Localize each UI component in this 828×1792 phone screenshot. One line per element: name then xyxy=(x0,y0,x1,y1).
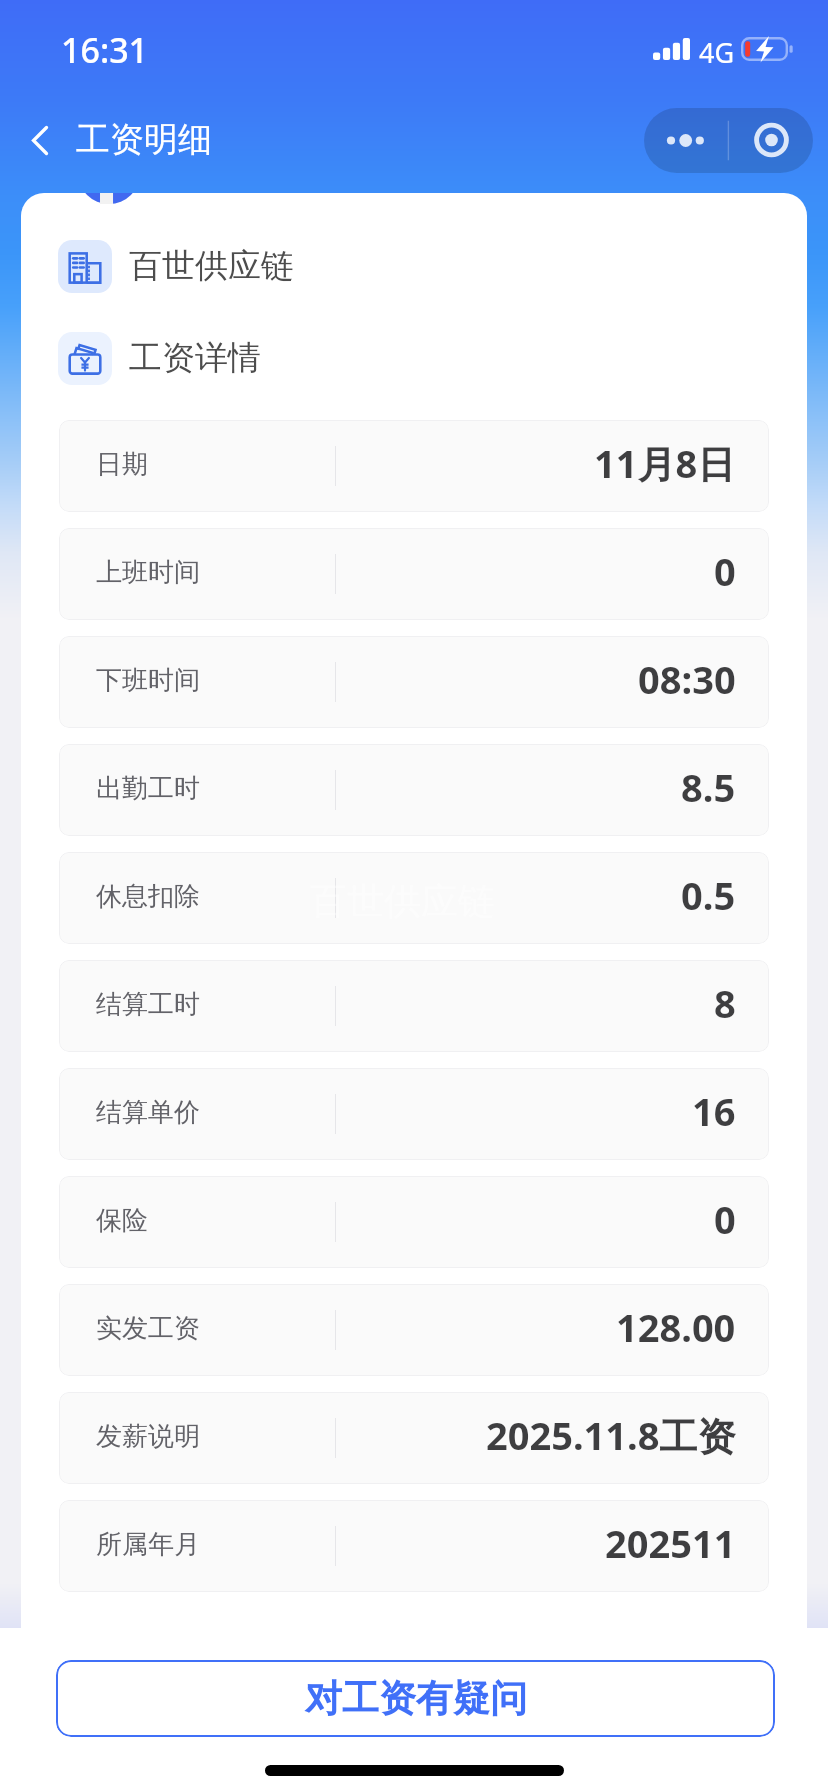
button[interactable]: Back xyxy=(10,110,70,170)
button[interactable]: 休息扣除 xyxy=(59,852,769,944)
button[interactable]: 发薪说明 xyxy=(59,1392,769,1484)
button[interactable]: 出勤工时 xyxy=(59,744,769,836)
staticText: 上班时间 xyxy=(96,556,200,589)
staticText: 百世供应链 xyxy=(129,245,294,287)
staticText: 202511 xyxy=(605,1517,736,1569)
button[interactable]: 上班时间 xyxy=(59,528,769,620)
staticText: 16 xyxy=(692,1085,736,1137)
staticText: 8 xyxy=(714,977,736,1029)
button[interactable]: 所属年月 xyxy=(59,1500,769,1592)
staticText: 工资明细 xyxy=(76,118,212,161)
button[interactable]: 实发工资 xyxy=(59,1284,769,1376)
staticText: 0 xyxy=(714,1193,736,1245)
button[interactable]: 日期 xyxy=(59,420,769,512)
staticText: 对工资有疑问 xyxy=(305,1675,527,1722)
staticText: 2025.11.8工资 xyxy=(486,1409,736,1461)
button[interactable]: 对工资有疑问 xyxy=(56,1660,775,1737)
staticText: 日期 xyxy=(96,448,148,481)
staticText: 出勤工时 xyxy=(96,772,200,805)
staticText: 实发工资 xyxy=(96,1312,200,1345)
staticText: 休息扣除 xyxy=(96,880,200,913)
staticText: 下班时间 xyxy=(96,664,200,697)
staticText: 结算单价 xyxy=(96,1096,200,1129)
staticText: 结算工时 xyxy=(96,988,200,1021)
button[interactable]: 下班时间 xyxy=(59,636,769,728)
button[interactable]: More menu xyxy=(644,108,813,173)
staticText: 128.00 xyxy=(616,1301,736,1353)
staticText: 0.5 xyxy=(681,869,736,921)
staticText: 所属年月 xyxy=(96,1528,200,1561)
button[interactable]: 结算单价 xyxy=(59,1068,769,1160)
staticText: 保险 xyxy=(96,1204,148,1237)
staticText: 工资详情 xyxy=(129,337,261,379)
staticText: 11月8日 xyxy=(594,437,736,489)
staticText: 16:31 xyxy=(61,27,149,73)
staticText: 8.5 xyxy=(681,761,736,813)
staticText: 发薪说明 xyxy=(96,1420,200,1453)
button[interactable]: 保险 xyxy=(59,1176,769,1268)
staticText: 4G xyxy=(699,34,735,71)
button[interactable]: 结算工时 xyxy=(59,960,769,1052)
staticText: 0 xyxy=(714,545,736,597)
staticText: 08:30 xyxy=(638,653,736,705)
